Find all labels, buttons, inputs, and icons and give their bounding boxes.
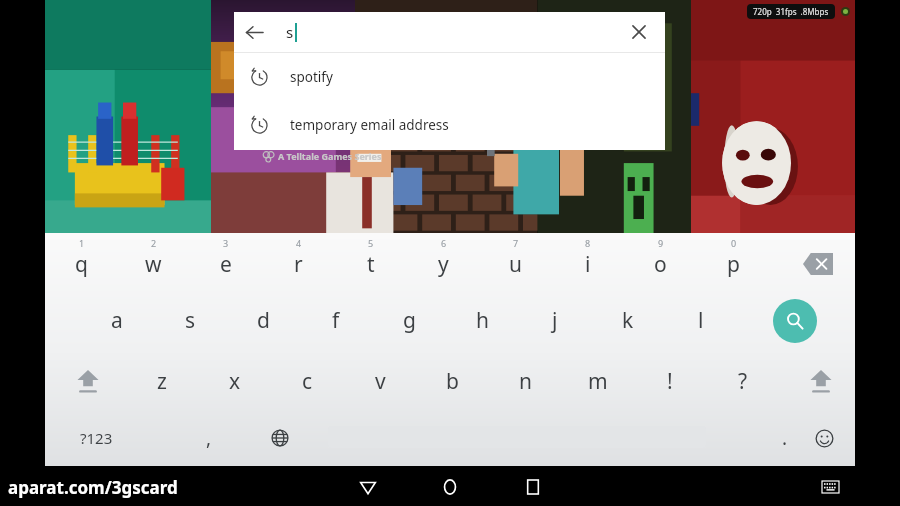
button[interactable]: c [274,355,340,407]
staticText: v [375,367,386,396]
button[interactable]: . [757,415,813,461]
button[interactable]: Shift [790,355,852,407]
staticText: 3 [223,237,229,249]
staticText: j [552,306,558,335]
staticText: 8 [585,237,591,249]
staticText: spotify [290,68,333,86]
staticText: temporary email address [290,116,449,134]
staticText: 1 [79,237,85,249]
button[interactable]: Change language [251,415,309,461]
staticText: u [509,250,522,279]
button[interactable]: m [565,355,631,407]
staticText: x [229,367,241,396]
staticText: p [727,250,740,279]
button[interactable]: 7 [479,237,551,289]
button[interactable]: 9 [624,237,696,289]
staticText: 6 [441,237,447,249]
staticText: r [294,250,303,279]
staticText: c [302,367,313,396]
staticText: t [367,250,375,279]
staticText: a [111,306,123,335]
staticText: 720p 31fps .8Mbps [753,6,829,17]
staticText: 5 [368,237,374,249]
button[interactable]: 4 [262,237,334,289]
staticText: i [585,250,591,279]
staticText: A Telltale Games Series [278,150,382,162]
staticText: n [519,367,532,396]
staticText: 4 [296,237,302,249]
staticText: b [446,367,459,396]
button[interactable]: , [179,415,239,461]
button[interactable]: ?123 [59,415,133,461]
button[interactable]: v [347,355,413,407]
button[interactable]: Backspace [790,249,846,279]
button[interactable]: z [129,355,195,407]
button[interactable]: j [521,295,589,345]
staticText: e [220,250,232,279]
staticText: aparat.com/3gscard [8,476,178,499]
staticText: g [403,306,416,335]
button[interactable]: d [229,295,297,345]
button[interactable]: s [274,12,619,52]
button[interactable]: Home [426,472,474,502]
staticText: l [698,306,704,335]
button[interactable]: 1 [45,237,117,289]
button[interactable]: b [419,355,485,407]
staticText: m [588,367,608,396]
staticText: ? [738,367,748,396]
staticText: ! [667,367,673,396]
button[interactable]: Recent apps [509,472,557,502]
staticText: z [157,367,167,396]
staticText: s [286,22,294,42]
button[interactable]: 5 [335,237,407,289]
button[interactable]: 3 [190,237,262,289]
staticText: 2 [151,237,157,249]
button[interactable]: l [667,295,735,345]
staticText: 9 [658,237,664,249]
button[interactable]: f [302,295,370,345]
staticText: q [75,250,88,279]
staticText: o [654,250,667,279]
staticText: w [145,250,162,279]
button[interactable]: spotify [234,53,665,101]
staticText: d [257,306,270,335]
button[interactable]: k [594,295,662,345]
button[interactable]: 0 [697,237,769,289]
button[interactable]: Back [344,472,392,502]
button[interactable]: g [375,295,443,345]
button[interactable]: x [202,355,268,407]
button[interactable]: s [156,295,224,345]
button[interactable]: ! [637,355,703,407]
staticText: y [438,250,449,279]
button[interactable]: 8 [552,237,624,289]
staticText: 0 [731,237,737,249]
staticText: s [185,306,196,335]
staticText: k [622,306,634,335]
button[interactable]: Navigate up [234,12,274,52]
button[interactable]: 6 [407,237,479,289]
button[interactable]: Shift [57,355,119,407]
button[interactable]: h [448,295,516,345]
staticText: f [332,306,340,335]
button[interactable]: n [492,355,558,407]
button[interactable]: 2 [117,237,189,289]
button[interactable]: Emoji [796,415,852,461]
button[interactable]: Keyboard [812,474,848,500]
button[interactable]: a [83,295,151,345]
button[interactable]: ? [710,355,776,407]
staticText: ?123 [80,428,113,448]
staticText: , [206,425,212,451]
staticText: . [782,425,788,451]
staticText: 7 [513,237,519,249]
button[interactable]: temporary email address [234,101,665,149]
button[interactable]: Search [773,299,817,343]
staticText: h [476,306,489,335]
button[interactable]: Clear search [619,12,659,52]
